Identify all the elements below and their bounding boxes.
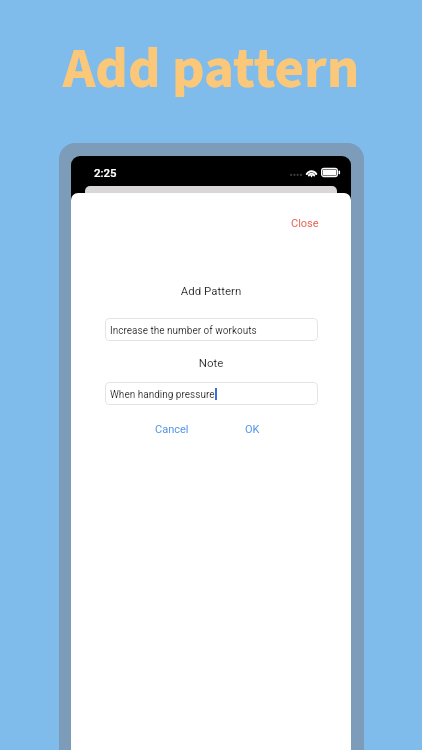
staticText: OK xyxy=(245,423,260,436)
staticText: When handing pressure xyxy=(110,389,215,401)
staticText: 2:25 xyxy=(94,166,117,179)
button[interactable]: Close xyxy=(283,211,327,236)
other: Battery full xyxy=(321,167,341,178)
staticText: Note xyxy=(71,356,351,369)
other: Cellular signal xyxy=(290,167,303,178)
button[interactable]: Increase the number of workouts xyxy=(105,318,318,341)
button[interactable]: When handing pressure xyxy=(105,382,318,405)
staticText: Increase the number of workouts xyxy=(110,325,257,337)
staticText: Cancel xyxy=(155,423,189,436)
staticText: Close xyxy=(291,217,319,230)
button[interactable]: OK xyxy=(237,417,268,442)
other: Wi-Fi xyxy=(305,167,318,178)
staticText: Add pattern xyxy=(0,29,422,110)
staticText: Add Pattern xyxy=(71,284,351,297)
button[interactable]: Cancel xyxy=(147,417,197,442)
